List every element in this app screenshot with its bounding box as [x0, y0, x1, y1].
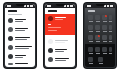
button[interactable]: [5, 61, 35, 67]
button[interactable]: [5, 34, 35, 43]
button[interactable]: Open app: [108, 46, 113, 55]
button[interactable]: [5, 52, 35, 61]
button[interactable]: Open app: [101, 46, 108, 55]
button[interactable]: [5, 43, 35, 52]
button[interactable]: [45, 64, 75, 67]
button[interactable]: [45, 55, 75, 64]
button[interactable]: Open app: [101, 14, 108, 23]
button[interactable]: Open app: [94, 46, 101, 55]
button[interactable]: Open app: [94, 24, 101, 33]
button[interactable]: [45, 37, 75, 46]
button[interactable]: Open app: [87, 14, 94, 23]
button[interactable]: Open app: [94, 14, 101, 23]
button[interactable]: Open app: [87, 46, 94, 55]
button[interactable]: Open app: [97, 56, 104, 65]
button[interactable]: Open app: [87, 56, 94, 65]
button[interactable]: Open app: [101, 24, 108, 33]
button[interactable]: [45, 46, 75, 55]
button[interactable]: Open app: [108, 14, 113, 23]
button[interactable]: Open app: [101, 34, 108, 43]
button[interactable]: [45, 14, 75, 35]
button[interactable]: Open app: [87, 34, 94, 43]
button[interactable]: Open app: [94, 34, 101, 43]
button[interactable]: Open app: [108, 24, 113, 33]
button[interactable]: [5, 16, 35, 25]
button[interactable]: [5, 25, 35, 34]
button[interactable]: Open app: [87, 24, 94, 33]
button[interactable]: Open app: [108, 34, 113, 43]
